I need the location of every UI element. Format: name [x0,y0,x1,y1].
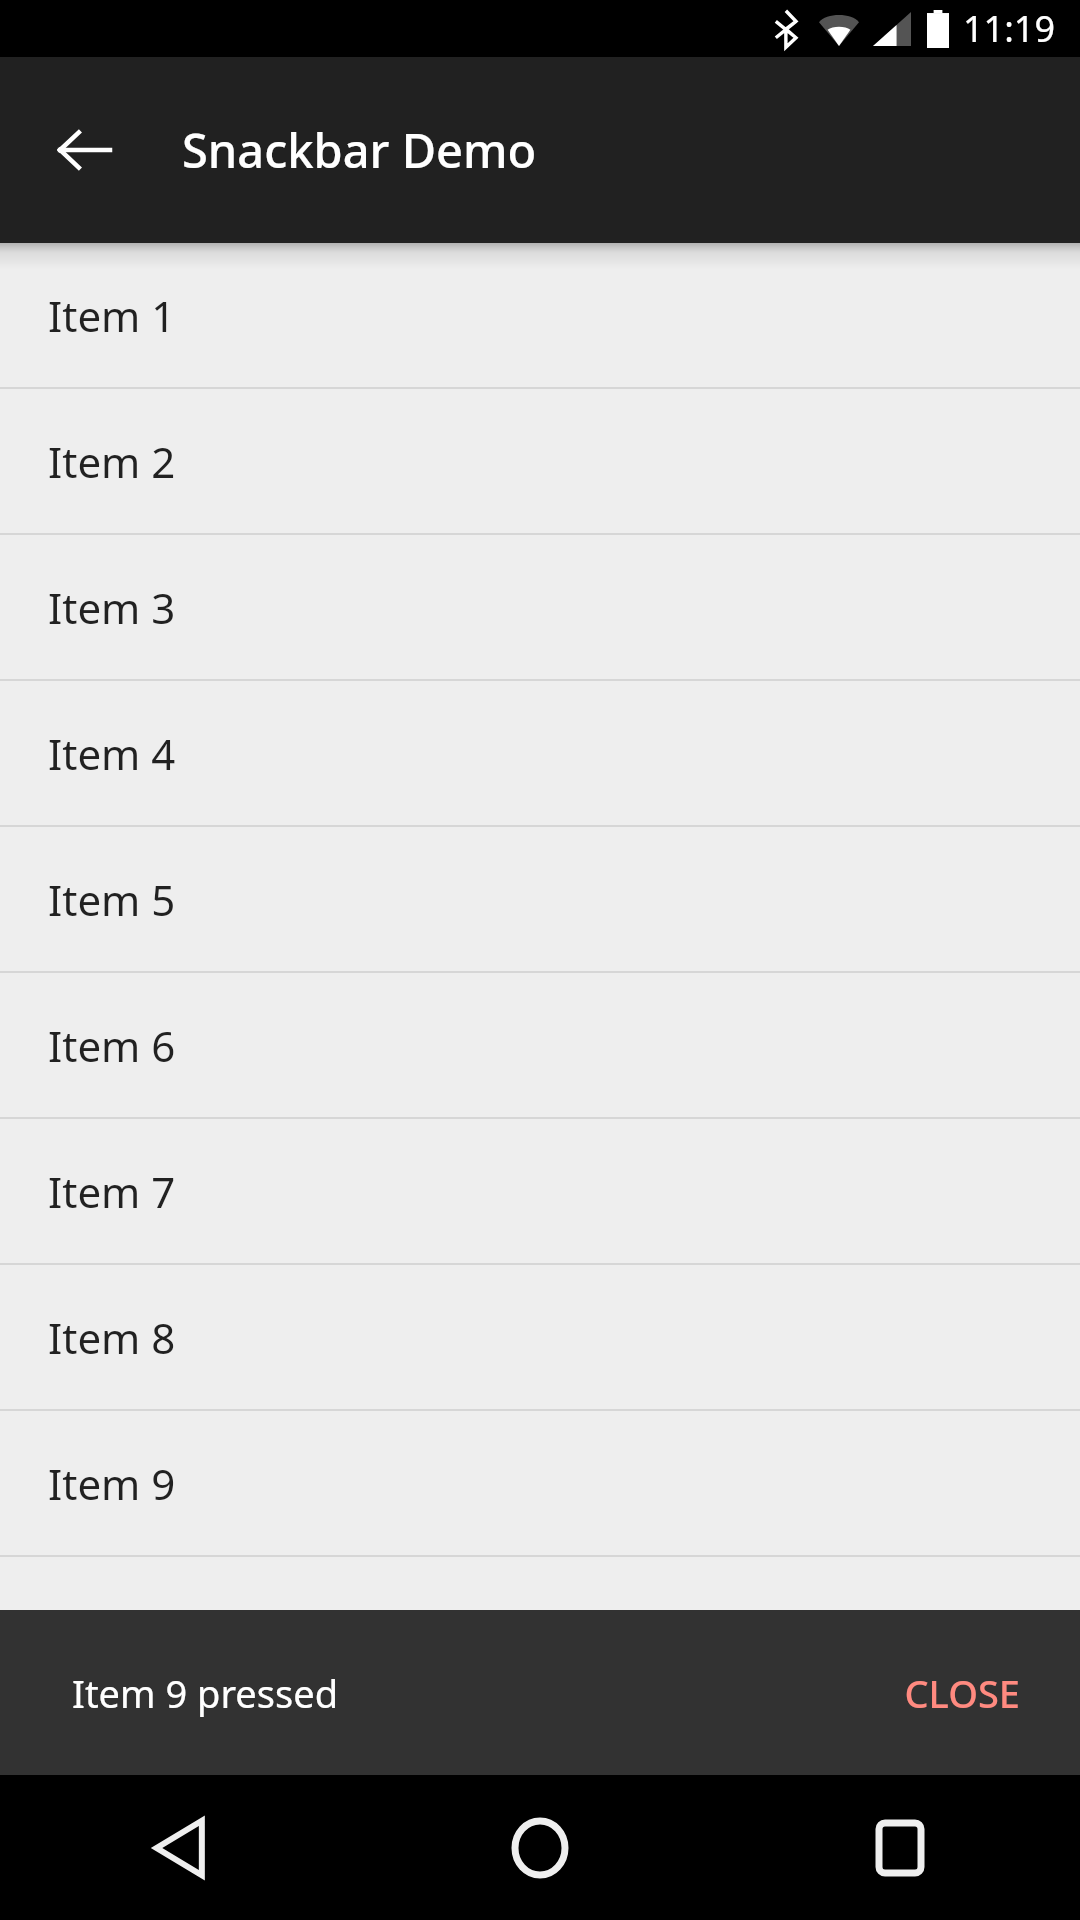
staticText: Item 7 [48,1163,176,1220]
staticText: Item 3 [48,579,176,636]
button[interactable]: Navigate up [28,94,140,206]
button[interactable]: Item 5 [0,827,1080,973]
button[interactable]: Item 3 [0,535,1080,681]
button[interactable]: Item 10 [0,1557,1080,1703]
button[interactable]: Back [0,1775,360,1920]
staticText: Snackbar Demo [182,118,537,182]
staticText: Item 2 [48,433,176,490]
button[interactable]: Item 8 [0,1265,1080,1411]
staticText: Item 1 [48,287,176,344]
button[interactable]: Item 2 [0,389,1080,535]
staticText: Item 9 [48,1455,176,1512]
staticText: Item 9 pressed [72,1667,339,1719]
button[interactable]: Item 9 [0,1411,1080,1557]
button[interactable]: Item 6 [0,973,1080,1119]
button[interactable]: Item 4 [0,681,1080,827]
button[interactable]: Item 7 [0,1119,1080,1265]
staticText: Item 8 [48,1309,176,1366]
button[interactable]: CLOSE [880,1647,1044,1739]
staticText: Item 5 [48,871,176,928]
staticText: 11:19 [963,4,1056,53]
staticText: Item 10 [48,1601,200,1658]
button[interactable]: Recent apps [720,1775,1080,1920]
staticText: Item 4 [48,725,176,782]
button[interactable]: Item 1 [0,243,1080,389]
button[interactable]: Home [360,1775,720,1920]
staticText: CLOSE [904,1667,1020,1719]
staticText: Item 6 [48,1017,176,1074]
